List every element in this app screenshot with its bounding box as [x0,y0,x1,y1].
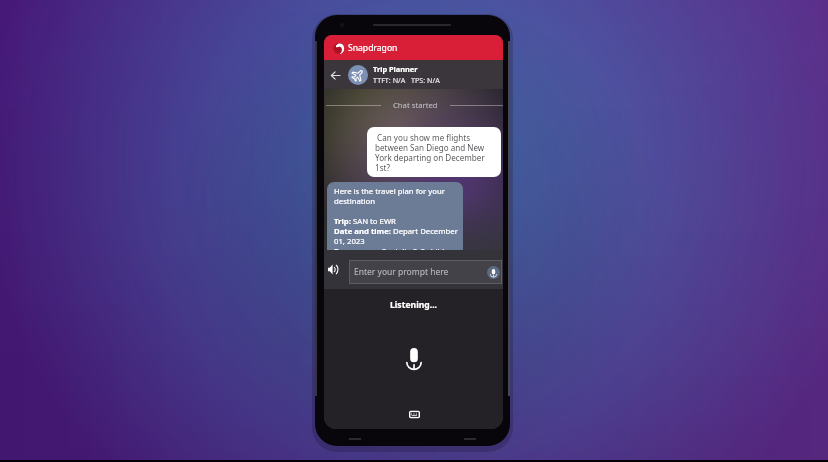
staticText: Listening... [390,299,437,311]
staticText: TTFT: N/A TPS: N/A [373,75,440,85]
button[interactable]: Back [324,62,346,88]
button[interactable]: Enter your prompt here [349,260,502,284]
staticText: Enter your prompt here [354,266,449,278]
button[interactable]: Microphone [403,345,425,371]
staticText: Chat started [393,100,438,110]
staticText: Can you show me flights between San Dieg… [375,132,493,172]
button[interactable]: Keyboard [407,407,421,421]
button[interactable]: Voice input [487,266,500,279]
staticText: Here is the travel plan for your destina… [334,186,459,256]
staticText: Snapdragon [348,42,398,54]
button[interactable]: Speaker [324,261,341,278]
staticText: Trip Planner [373,64,418,74]
